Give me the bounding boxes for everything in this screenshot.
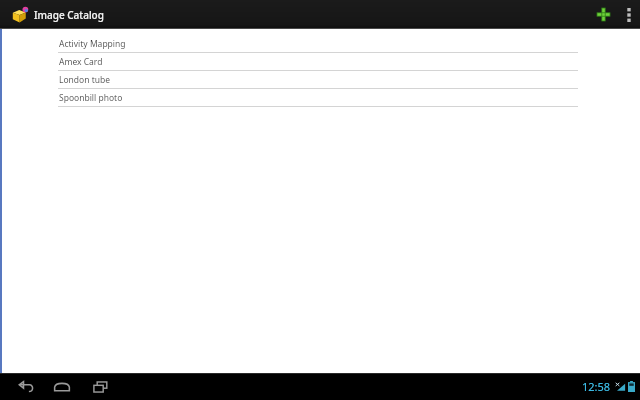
button[interactable]: Activity Mapping xyxy=(0,35,640,53)
button[interactable]: Spoonbill photo xyxy=(0,89,640,107)
button[interactable]: 12:58 xyxy=(582,379,640,394)
button[interactable]: Amex Card xyxy=(0,53,640,71)
staticText: London tube xyxy=(59,74,111,86)
staticText: Spoonbill photo xyxy=(59,92,123,104)
staticText: Image Catalog xyxy=(34,8,104,22)
button[interactable]: Image Catalog app icon xyxy=(9,4,31,26)
staticText: Amex Card xyxy=(59,56,103,68)
button[interactable]: Back xyxy=(13,373,39,400)
button[interactable]: More options xyxy=(618,0,640,29)
button[interactable]: Add xyxy=(588,0,618,29)
button[interactable]: London tube xyxy=(0,71,640,89)
button[interactable]: Recent apps xyxy=(87,373,113,400)
staticText: 12:58 xyxy=(582,379,611,394)
staticText: Activity Mapping xyxy=(59,38,126,50)
button[interactable]: Home xyxy=(49,373,75,400)
